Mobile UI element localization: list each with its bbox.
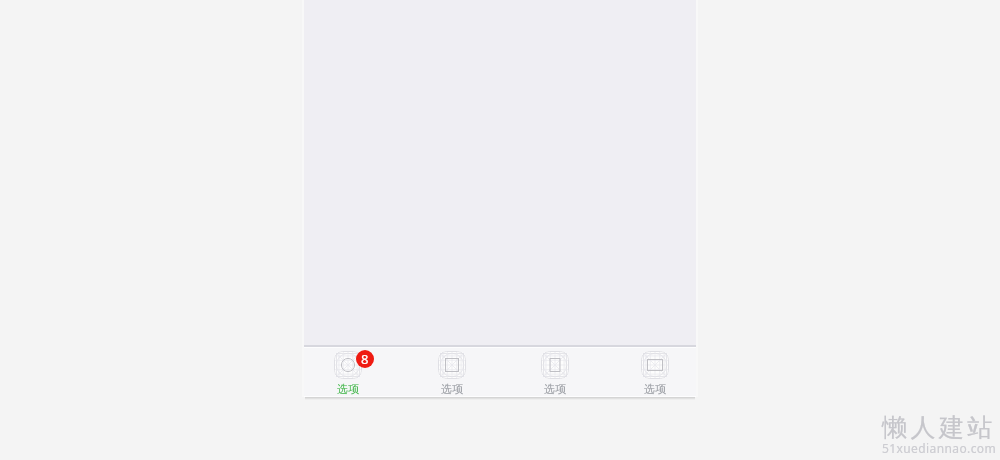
staticText: 选项	[644, 382, 666, 396]
button[interactable]: 选项	[598, 346, 696, 396]
button[interactable]: 选项	[304, 346, 402, 396]
staticText: 懒人建站	[882, 412, 996, 443]
button[interactable]: 选项	[500, 346, 598, 396]
staticText: 选项	[337, 382, 359, 396]
staticText: 选项	[441, 382, 463, 396]
staticText: 51xuediannao.com	[882, 440, 997, 456]
staticText: 选项	[544, 382, 566, 396]
button[interactable]: 选项	[402, 346, 500, 396]
staticText: 8	[361, 350, 369, 368]
